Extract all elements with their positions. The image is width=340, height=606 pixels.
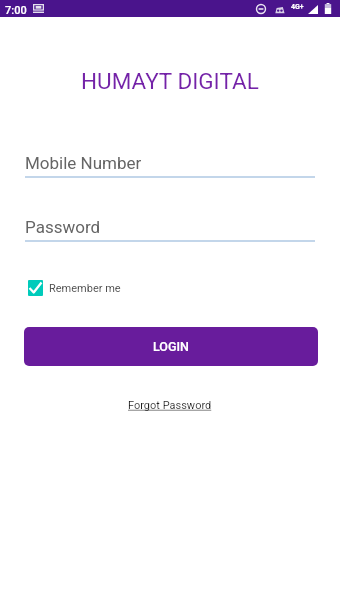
other: Vibration mode <box>274 5 285 14</box>
button[interactable]: Password <box>25 217 315 242</box>
staticText: 4G+ <box>291 3 304 11</box>
staticText: LOGIN <box>153 339 189 354</box>
button[interactable]: Remember me <box>28 280 121 296</box>
button[interactable]: LOGIN <box>24 327 318 366</box>
button[interactable]: Forgot Password <box>128 399 212 412</box>
other: Do not disturb <box>256 4 266 14</box>
other: Screen cast <box>33 4 44 13</box>
staticText: Remember me <box>49 282 121 295</box>
other: Battery <box>324 3 332 14</box>
staticText: 7:00 <box>5 4 27 17</box>
staticText: Mobile Number <box>25 153 142 173</box>
other: Signal strength <box>308 5 318 14</box>
staticText: Password <box>25 217 101 237</box>
staticText: HUMAYT DIGITAL <box>81 68 259 94</box>
button[interactable]: Mobile Number <box>25 153 315 178</box>
